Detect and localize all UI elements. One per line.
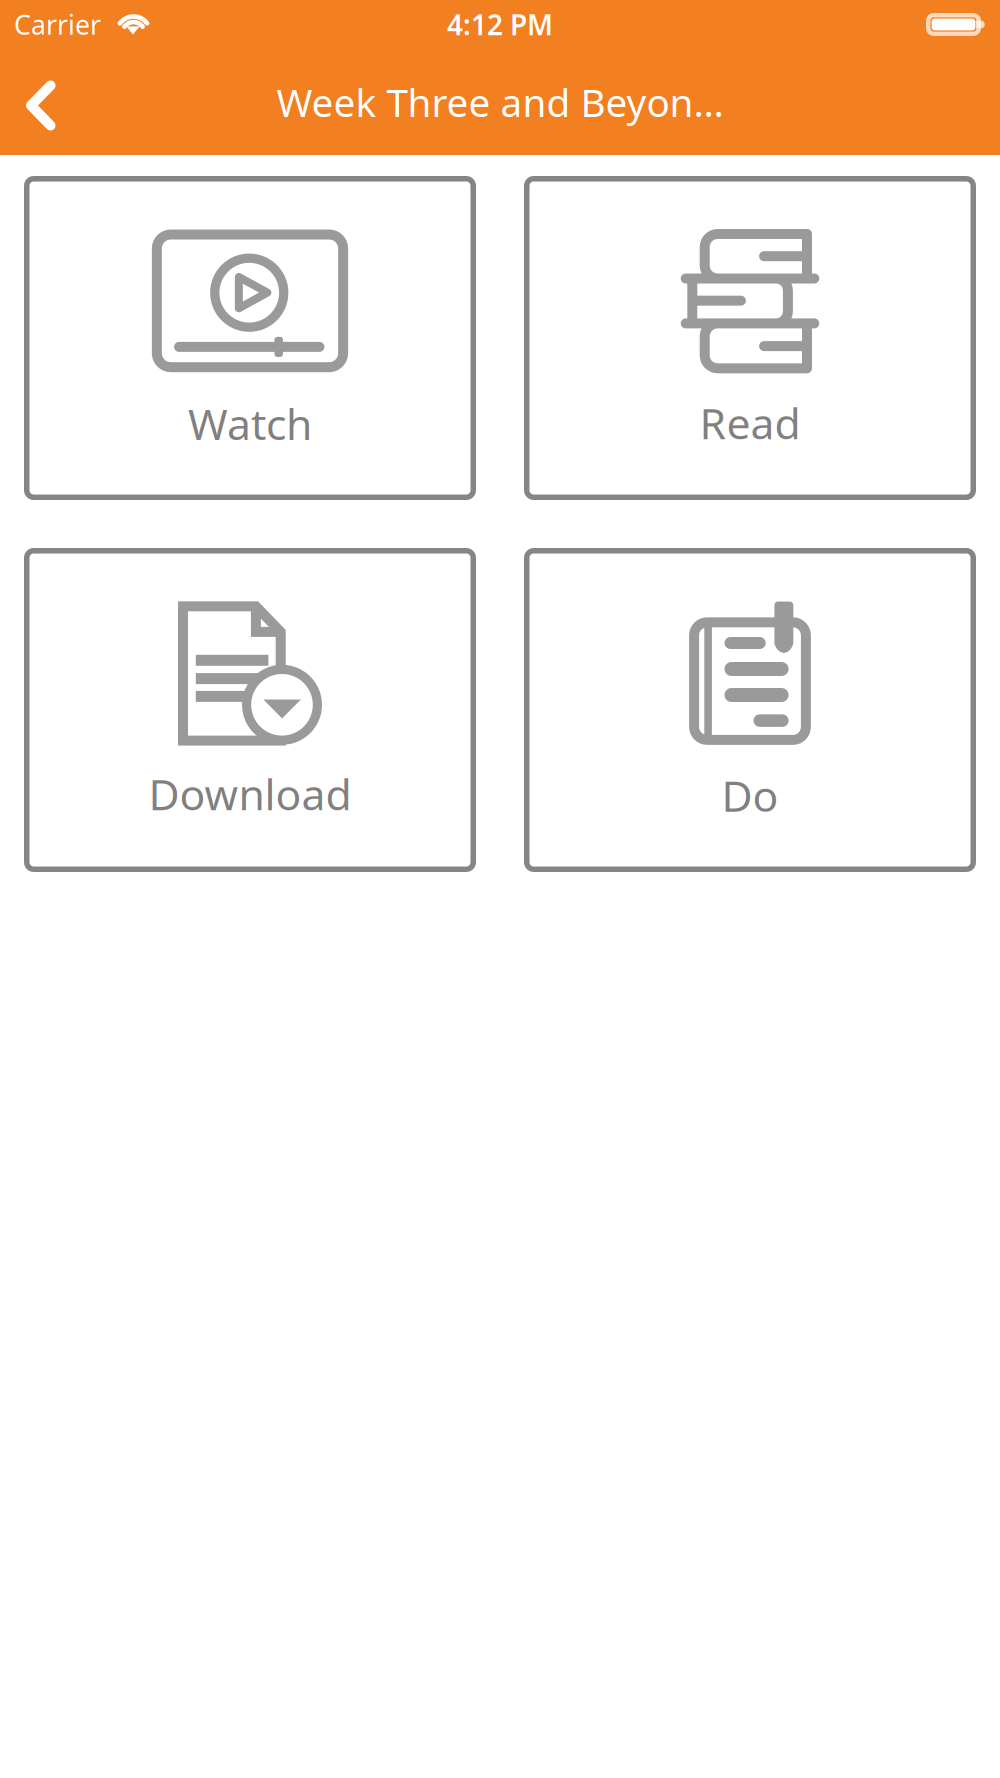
button[interactable]: Do	[524, 548, 976, 872]
staticText: Download	[148, 765, 351, 822]
staticText: Watch	[188, 395, 312, 452]
staticText: 4:12 PM	[447, 6, 553, 43]
staticText: Read	[699, 394, 800, 451]
button[interactable]: Read	[524, 176, 976, 500]
staticText: Week Three and Beyon...	[276, 76, 723, 128]
button[interactable]: Back	[0, 49, 79, 155]
staticText: Carrier	[14, 7, 101, 42]
button[interactable]: Download	[24, 548, 476, 872]
staticText: Do	[721, 767, 778, 824]
button[interactable]: Watch	[24, 176, 476, 500]
